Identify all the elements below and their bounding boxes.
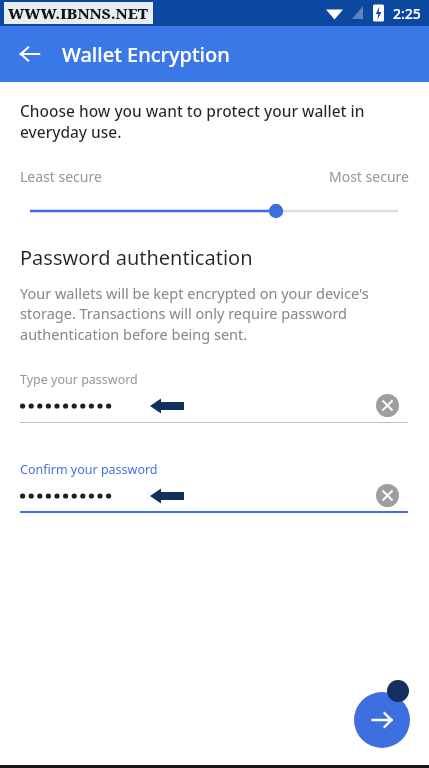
staticText: Most secure bbox=[329, 167, 409, 186]
button[interactable]: Next bbox=[354, 692, 410, 748]
staticText: Type your password bbox=[20, 371, 138, 388]
staticText: Your wallets will be kept encrypted on y… bbox=[20, 283, 409, 345]
staticText: Choose how you want to protect your wall… bbox=[20, 100, 409, 143]
button[interactable] bbox=[0, 200, 429, 222]
button[interactable]: Clear text bbox=[374, 392, 400, 418]
staticText: Wallet Encryption bbox=[62, 41, 230, 68]
staticText: Password authentication bbox=[20, 244, 253, 271]
button[interactable]: Type your password bbox=[0, 367, 429, 423]
staticText: Confirm your password bbox=[20, 461, 158, 478]
button[interactable]: Back bbox=[8, 32, 52, 76]
button[interactable]: Clear text bbox=[374, 482, 400, 508]
staticText: WWW.IBNNS.NET bbox=[8, 3, 149, 23]
button[interactable]: Confirm your password bbox=[0, 457, 429, 513]
staticText: 2:25 bbox=[393, 4, 421, 23]
staticText: Least secure bbox=[20, 167, 102, 186]
